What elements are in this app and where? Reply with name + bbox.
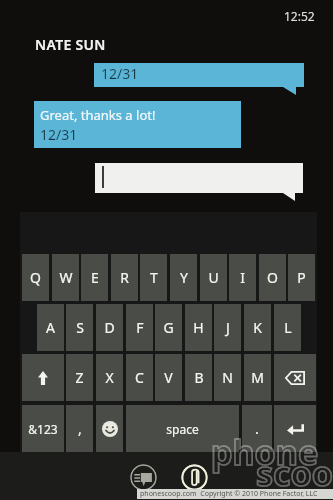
staticText: C bbox=[135, 368, 144, 387]
button[interactable]: M bbox=[244, 354, 271, 401]
button[interactable]: Great, thanks a lot! bbox=[34, 101, 241, 148]
staticText: S bbox=[76, 318, 84, 337]
button[interactable]: J bbox=[214, 304, 241, 351]
staticText: U bbox=[208, 268, 219, 287]
staticText: scoop bbox=[256, 450, 333, 496]
staticText: , bbox=[78, 419, 82, 438]
button[interactable]: . bbox=[242, 405, 272, 452]
staticText: V bbox=[164, 368, 173, 387]
button[interactable]: NATE SUN bbox=[35, 35, 106, 54]
button[interactable]: F bbox=[126, 304, 153, 351]
button[interactable]: 12/31 bbox=[94, 63, 304, 87]
button[interactable]: New message bbox=[130, 464, 157, 491]
staticText: D bbox=[104, 318, 115, 337]
button[interactable]: V bbox=[155, 354, 182, 401]
button[interactable]: X bbox=[96, 354, 123, 401]
staticText: M bbox=[251, 368, 264, 387]
button[interactable]: Emoji bbox=[96, 405, 123, 452]
button[interactable]: P bbox=[288, 254, 315, 301]
button[interactable]: D bbox=[96, 304, 123, 351]
button[interactable]: S bbox=[66, 304, 93, 351]
button[interactable]: &123 bbox=[22, 405, 64, 452]
staticText: E bbox=[91, 268, 99, 287]
staticText: F bbox=[136, 318, 144, 337]
button[interactable]: G bbox=[155, 304, 182, 351]
button[interactable]: Q bbox=[22, 254, 49, 301]
staticText: J bbox=[226, 318, 230, 337]
staticText: N bbox=[222, 368, 233, 387]
staticText: H bbox=[193, 318, 204, 337]
button[interactable]: O bbox=[259, 254, 286, 301]
button[interactable]: I bbox=[229, 254, 256, 301]
button[interactable]: R bbox=[111, 254, 138, 301]
staticText: Z bbox=[75, 368, 84, 387]
staticText: phonescoop.com Copyright © 2010 Phone Fa… bbox=[140, 489, 318, 499]
staticText: I bbox=[240, 268, 245, 287]
button[interactable]: Y bbox=[170, 254, 197, 301]
button[interactable]: T bbox=[140, 254, 167, 301]
other: Shift bbox=[38, 371, 48, 385]
staticText: . bbox=[255, 419, 259, 438]
button[interactable]: A bbox=[37, 304, 64, 351]
button[interactable]: U bbox=[200, 254, 227, 301]
button[interactable]: space bbox=[126, 405, 239, 452]
button[interactable]: Shift bbox=[22, 354, 64, 401]
other: Enter bbox=[287, 423, 304, 435]
staticText: 12/31 bbox=[101, 64, 139, 83]
staticText: X bbox=[105, 368, 114, 387]
button[interactable]: L bbox=[274, 304, 301, 351]
button[interactable]: N bbox=[214, 354, 241, 401]
staticText: Y bbox=[180, 268, 188, 287]
other: Backspace bbox=[285, 371, 305, 385]
staticText: P bbox=[297, 268, 306, 287]
button[interactable]: C bbox=[126, 354, 153, 401]
staticText: G bbox=[163, 318, 174, 337]
button[interactable]: Backspace bbox=[274, 354, 316, 401]
staticText: R bbox=[120, 268, 129, 287]
staticText: phone bbox=[211, 429, 319, 475]
button[interactable]: W bbox=[52, 254, 79, 301]
button[interactable]: , bbox=[66, 405, 93, 452]
staticText: W bbox=[59, 268, 73, 287]
staticText: &123 bbox=[28, 421, 58, 437]
staticText: Great, thanks a lot! bbox=[40, 106, 156, 124]
button[interactable]: B bbox=[185, 354, 212, 401]
button[interactable]: E bbox=[81, 254, 108, 301]
button[interactable]: Enter bbox=[274, 405, 316, 452]
staticText: K bbox=[253, 318, 262, 337]
staticText: L bbox=[284, 318, 292, 337]
staticText: space bbox=[166, 421, 199, 437]
staticText: A bbox=[46, 318, 55, 337]
button[interactable]: Z bbox=[66, 354, 93, 401]
button[interactable]: K bbox=[244, 304, 271, 351]
button[interactable] bbox=[95, 163, 303, 193]
staticText: O bbox=[267, 268, 278, 287]
other: Emoji bbox=[102, 421, 118, 437]
staticText: B bbox=[194, 368, 204, 387]
staticText: 12/31 bbox=[40, 125, 78, 144]
staticText: 12:52 bbox=[284, 8, 315, 24]
staticText: T bbox=[150, 268, 158, 287]
button[interactable]: Attach bbox=[181, 464, 208, 491]
staticText: Q bbox=[30, 268, 41, 287]
button[interactable]: H bbox=[185, 304, 212, 351]
